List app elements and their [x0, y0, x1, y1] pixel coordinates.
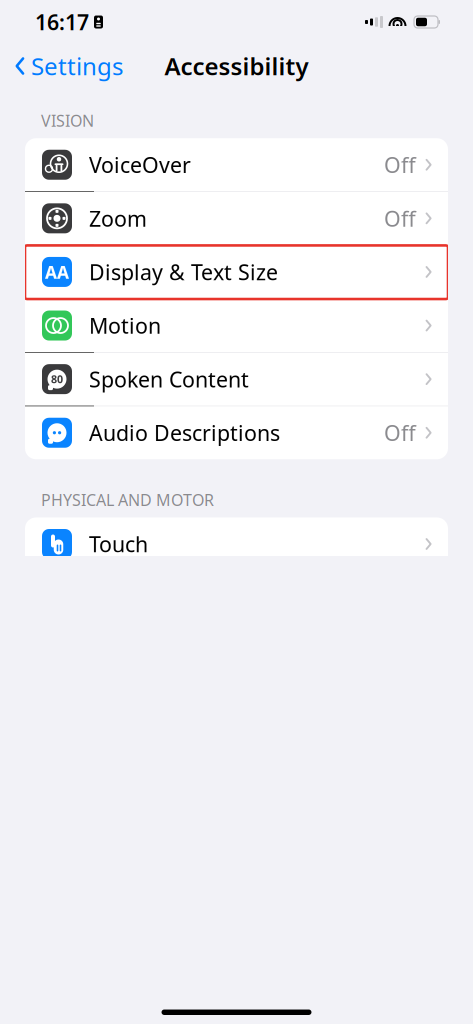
- staticText: 16:17: [35, 8, 89, 36]
- staticText: 80: [51, 372, 63, 386]
- staticText: Motion: [89, 311, 161, 340]
- staticText: Settings: [31, 50, 123, 82]
- staticText: Audio Descriptions: [89, 419, 280, 447]
- staticText: Off: [384, 419, 416, 447]
- button[interactable]: VoiceOver: [25, 138, 448, 192]
- staticText: VoiceOver: [89, 151, 191, 179]
- button[interactable]: Settings: [0, 44, 133, 88]
- button[interactable]: AA: [25, 245, 448, 299]
- staticText: Display & Text Size: [89, 258, 278, 286]
- button[interactable]: Audio Descriptions: [25, 406, 448, 459]
- staticText: Off: [384, 204, 416, 232]
- staticText: Zoom: [89, 204, 147, 232]
- staticText: AA: [45, 260, 69, 283]
- staticText: Off: [384, 151, 416, 179]
- button[interactable]: Motion: [25, 299, 448, 353]
- staticText: VISION: [41, 110, 94, 131]
- staticText: Accessibility: [164, 50, 308, 82]
- button[interactable]: Zoom: [25, 192, 448, 245]
- staticText: Touch: [89, 530, 148, 558]
- button[interactable]: 80: [25, 353, 448, 406]
- staticText: Spoken Content: [89, 365, 249, 393]
- staticText: PHYSICAL AND MOTOR: [41, 489, 214, 510]
- button[interactable]: Touch: [25, 517, 448, 571]
